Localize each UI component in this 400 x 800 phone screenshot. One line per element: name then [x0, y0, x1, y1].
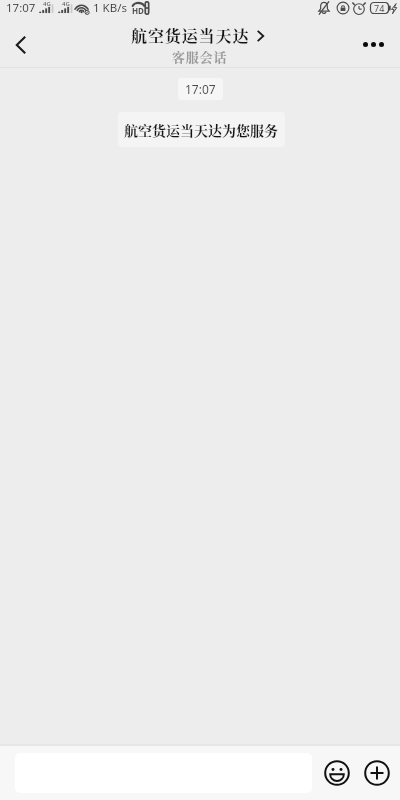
staticText: 74: [374, 2, 385, 14]
button[interactable]: Back: [0, 24, 42, 66]
staticText: 17:07: [185, 81, 216, 97]
staticText: 1 KB/s: [93, 0, 127, 16]
staticText: 客服会话: [172, 47, 228, 66]
staticText: HD: [132, 5, 144, 16]
button[interactable]: More: [364, 760, 390, 786]
staticText: 航空货运当天达: [131, 24, 250, 47]
staticText: 航空货运当天达为您服务: [124, 120, 278, 140]
button[interactable]: Emoji: [324, 760, 350, 786]
staticText: 4G: [43, 0, 51, 8]
staticText: 17:07: [6, 0, 36, 16]
button[interactable]: More options: [352, 21, 400, 68]
staticText: 4G: [62, 0, 70, 8]
